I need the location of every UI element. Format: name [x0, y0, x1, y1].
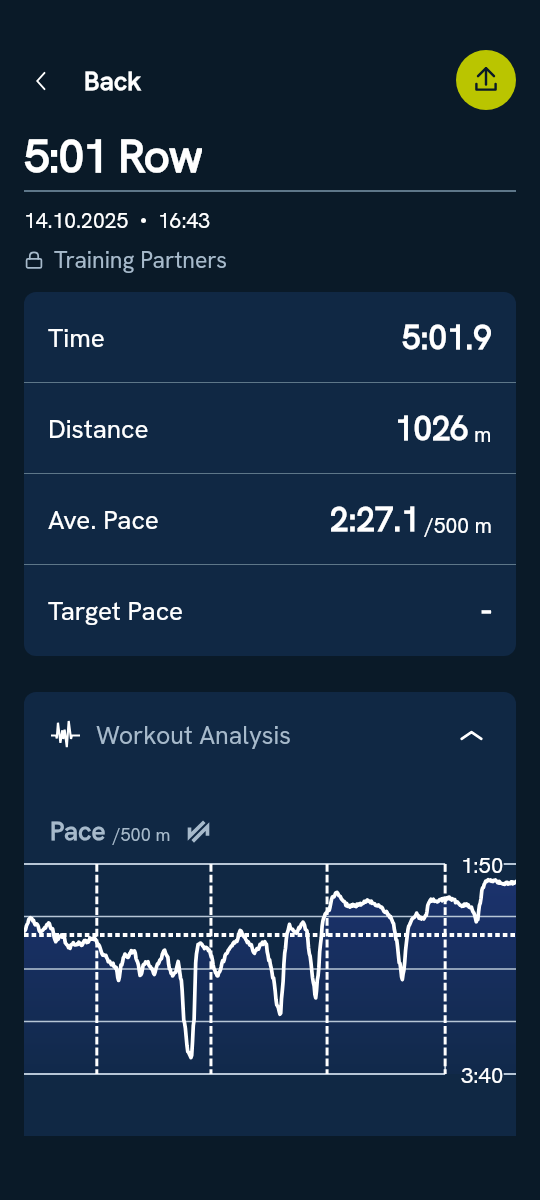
staticText: Workout Analysis: [96, 719, 291, 752]
staticText: /500 m: [425, 512, 492, 539]
staticText: Target Pace: [48, 594, 184, 628]
button[interactable]: Target Pace: [24, 565, 516, 656]
staticText: 1026: [395, 407, 469, 450]
staticText: 16:43: [158, 207, 211, 234]
staticText: 5:01.9: [402, 316, 492, 359]
button[interactable]: Training Partners: [0, 243, 228, 277]
staticText: Ave. Pace: [48, 503, 159, 537]
staticText: 5:01 Row: [24, 126, 202, 178]
staticText: 1:50: [461, 851, 504, 880]
staticText: 3:40: [461, 1061, 504, 1090]
staticText: Back: [84, 64, 141, 98]
staticText: Training Partners: [54, 245, 228, 275]
staticText: 14.10.2025: [24, 207, 129, 234]
staticText: 2:27.1: [330, 498, 420, 541]
staticText: /500 m: [113, 823, 171, 846]
button[interactable]: Back: [18, 56, 159, 106]
staticText: Pace: [50, 814, 106, 848]
button[interactable]: Distance: [24, 383, 516, 474]
button[interactable]: Time: [24, 292, 516, 383]
staticText: Time: [48, 321, 105, 355]
staticText: -: [481, 589, 492, 632]
button[interactable]: Ave. Pace: [24, 474, 516, 565]
button[interactable]: Workout Analysis: [24, 692, 516, 778]
button[interactable]: Share workout: [456, 50, 516, 110]
staticText: m: [474, 421, 492, 448]
staticText: Distance: [48, 412, 149, 446]
